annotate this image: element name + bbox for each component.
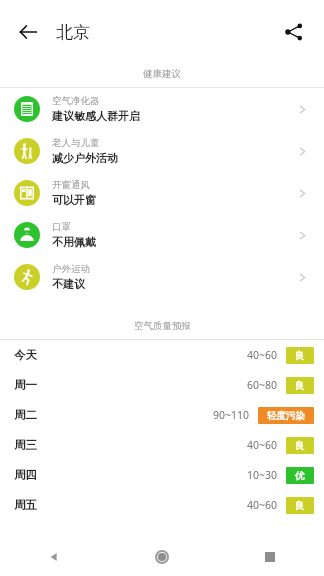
button[interactable]: 周五: [0, 490, 324, 520]
staticText: 空气净化器: [52, 95, 100, 107]
button[interactable]: 周一: [0, 370, 324, 400]
staticText: 周二: [14, 408, 37, 422]
button[interactable]: 周四: [0, 460, 324, 490]
staticText: 空气质量预报: [134, 320, 191, 332]
staticText: 40~60: [247, 348, 278, 362]
button[interactable]: Back: [0, 538, 108, 576]
staticText: 户外运动: [52, 263, 90, 275]
staticText: 周一: [14, 378, 37, 392]
staticText: 周四: [14, 468, 37, 482]
staticText: 不用佩戴: [52, 235, 96, 249]
staticText: 90~110: [213, 408, 250, 422]
staticText: 良: [295, 500, 305, 512]
staticText: 轻度污染: [267, 410, 305, 422]
button[interactable]: 开窗通风: [0, 172, 324, 214]
button[interactable]: 老人与儿童: [0, 130, 324, 172]
button[interactable]: 今天: [0, 340, 324, 370]
staticText: 周五: [14, 498, 37, 512]
button[interactable]: 户外运动: [0, 256, 324, 298]
staticText: 周三: [14, 438, 37, 452]
staticText: 北京: [56, 22, 90, 43]
staticText: 不建议: [52, 277, 85, 291]
button[interactable]: Back: [6, 10, 50, 54]
button[interactable]: Share: [272, 10, 316, 54]
button[interactable]: 空气净化器: [0, 88, 324, 130]
button[interactable]: 周三: [0, 430, 324, 460]
button[interactable]: Recent apps: [216, 538, 324, 576]
staticText: 老人与儿童: [52, 137, 100, 149]
staticText: 可以开窗: [52, 193, 96, 207]
button[interactable]: 周二: [0, 400, 324, 430]
staticText: 良: [295, 440, 305, 452]
staticText: 开窗通风: [52, 179, 90, 191]
staticText: 优: [295, 470, 305, 482]
staticText: 10~30: [247, 468, 278, 482]
staticText: 40~60: [247, 498, 278, 512]
staticText: 健康建议: [143, 68, 181, 80]
staticText: 建议敏感人群开启: [52, 109, 140, 123]
staticText: 60~80: [247, 378, 278, 392]
staticText: 40~60: [247, 438, 278, 452]
staticText: 良: [295, 350, 305, 362]
button[interactable]: Home: [108, 538, 216, 576]
staticText: 减少户外活动: [52, 151, 118, 165]
staticText: 口罩: [52, 221, 71, 233]
staticText: 良: [295, 380, 305, 392]
button[interactable]: 口罩: [0, 214, 324, 256]
staticText: 今天: [14, 348, 37, 362]
